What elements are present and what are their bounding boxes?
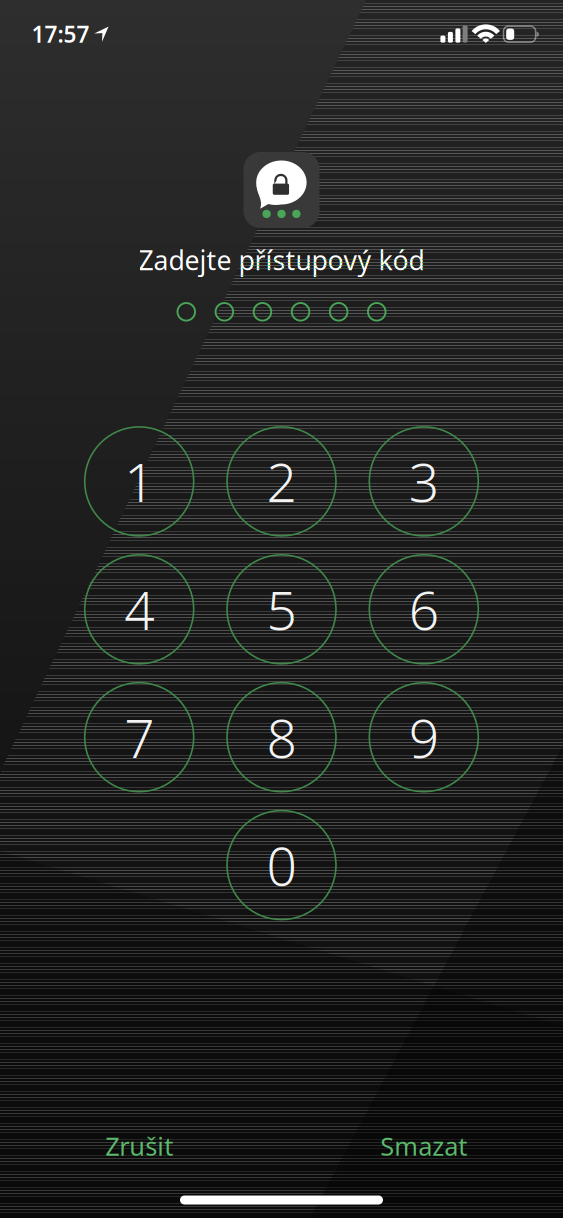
button[interactable]: 6 — [369, 555, 478, 664]
button[interactable]: 5 — [227, 555, 336, 664]
staticText: 8 — [266, 702, 296, 773]
staticText: 7 — [124, 702, 154, 773]
button[interactable]: 7 — [85, 683, 194, 792]
staticText: Smazat — [380, 1129, 467, 1163]
staticText: 0 — [266, 830, 296, 900]
staticText: Zrušit — [105, 1129, 173, 1163]
button[interactable]: 4 — [85, 555, 194, 664]
staticText: 2 — [266, 446, 296, 517]
staticText: 5 — [266, 574, 296, 645]
staticText: 3 — [409, 446, 439, 517]
button[interactable]: 3 — [369, 427, 478, 536]
button[interactable]: 1 — [85, 427, 194, 536]
button[interactable]: Zrušit — [69, 1123, 209, 1169]
staticText: 9 — [409, 702, 439, 773]
staticText: Zadejte přístupový kód — [138, 242, 424, 278]
staticText: 4 — [124, 574, 154, 645]
button[interactable]: Smazat — [349, 1123, 499, 1169]
staticText: 1 — [124, 446, 154, 517]
button[interactable]: 8 — [227, 683, 336, 792]
staticText: 6 — [409, 574, 439, 645]
button[interactable]: 9 — [369, 683, 478, 792]
staticText: 17:57 — [31, 19, 89, 49]
button[interactable]: 2 — [227, 427, 336, 536]
button[interactable]: 0 — [227, 811, 336, 920]
